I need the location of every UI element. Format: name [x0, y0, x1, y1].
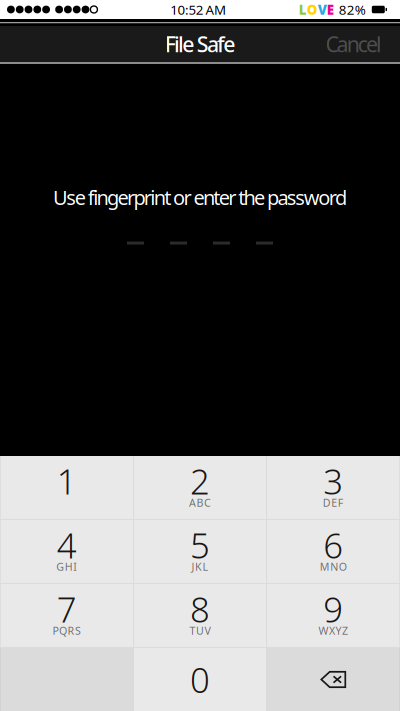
staticText: 6 — [323, 522, 343, 568]
staticText: L — [299, 1, 307, 18]
staticText: JKL — [191, 559, 208, 574]
button[interactable]: 7 — [0, 584, 133, 647]
button[interactable]: 9 — [267, 584, 400, 647]
staticText: 5 — [190, 522, 210, 568]
button[interactable]: 1 — [0, 456, 133, 519]
staticText: V — [318, 1, 327, 18]
staticText: E — [327, 1, 334, 18]
staticText: 7 — [57, 586, 77, 632]
staticText: Cancel — [325, 30, 382, 58]
staticText: DEF — [323, 495, 344, 510]
staticText: 8 — [190, 586, 210, 632]
button[interactable]: 6 — [267, 520, 400, 583]
staticText: 9 — [323, 586, 343, 632]
button[interactable]: 4 — [0, 520, 133, 583]
button[interactable]: 8 — [133, 584, 267, 647]
staticText: MNO — [320, 559, 347, 574]
staticText: ABC — [189, 495, 211, 510]
button[interactable]: Cancel — [311, 26, 400, 62]
staticText: 0 — [190, 656, 210, 702]
staticText: 4 — [57, 522, 77, 568]
staticText: Use fingerprint or enter the password — [53, 184, 347, 211]
staticText: WXYZ — [318, 623, 348, 638]
staticText: 82% — [339, 1, 366, 18]
staticText: PQRS — [52, 623, 81, 638]
button[interactable]: 0 — [133, 648, 267, 711]
button[interactable]: Delete — [267, 648, 400, 711]
staticText: File Safe — [165, 30, 235, 58]
staticText: 10:52 AM — [170, 1, 226, 18]
button[interactable]: 3 — [267, 456, 400, 519]
staticText: O — [307, 1, 318, 18]
staticText: GHI — [56, 559, 77, 574]
staticText: 2 — [190, 458, 210, 504]
staticText: TUV — [189, 623, 210, 638]
staticText: 1 — [57, 458, 77, 504]
button[interactable]: 5 — [133, 520, 267, 583]
staticText: 3 — [323, 458, 343, 504]
button[interactable]: 2 — [133, 456, 267, 519]
